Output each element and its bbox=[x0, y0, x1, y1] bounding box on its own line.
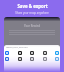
button[interactable]: Share to Telegram bbox=[55, 51, 59, 55]
staticText: Share your recap anywhere bbox=[15, 11, 49, 15]
button[interactable]: Share to Drive bbox=[55, 57, 59, 61]
button[interactable]: More options bbox=[43, 57, 47, 61]
staticText: Your Rewind bbox=[24, 24, 41, 28]
staticText: rewind_2024_final.mp4 bbox=[6, 46, 28, 49]
staticText: Save & export bbox=[17, 3, 48, 9]
button[interactable]: Share to X bbox=[30, 51, 34, 55]
button[interactable]: Copy link bbox=[43, 51, 47, 55]
button[interactable]: Share to TikTok bbox=[18, 51, 22, 55]
button[interactable]: Save to device bbox=[18, 57, 22, 61]
button[interactable]: Share to Mail bbox=[30, 57, 34, 61]
button[interactable]: Share to Facebook bbox=[5, 51, 9, 55]
button[interactable]: Share to Messenger bbox=[5, 57, 9, 61]
